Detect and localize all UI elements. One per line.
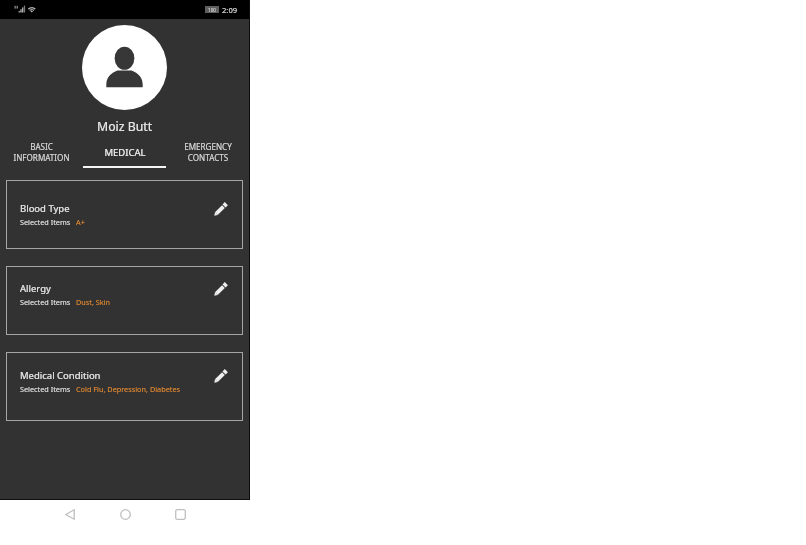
staticText: 100	[208, 7, 216, 13]
button[interactable]: Allergy	[6, 266, 243, 335]
button[interactable]: BASIC INFORMATION	[0, 139, 83, 168]
button[interactable]: MEDICAL	[83, 139, 166, 168]
button[interactable]: Edit Medical Condition	[213, 366, 231, 384]
staticText: Blood Type	[20, 202, 70, 215]
staticText: Allergy	[20, 282, 51, 295]
button[interactable]: Edit Blood Type	[213, 199, 231, 217]
staticText: Moiz Butt	[97, 118, 153, 135]
button[interactable]: Home	[110, 500, 140, 528]
staticText: Selected Items	[20, 217, 71, 227]
staticText: Cold Flu, Depression, Diabetes	[76, 384, 181, 394]
button[interactable]: Recent apps	[165, 500, 195, 528]
button[interactable]: Profile photo	[82, 25, 167, 110]
button[interactable]: Edit Allergy	[213, 279, 231, 297]
staticText: MEDICAL	[104, 146, 146, 159]
staticText: 2:09	[222, 5, 238, 15]
button[interactable]: Blood Type	[6, 180, 243, 249]
button[interactable]: Back	[55, 500, 85, 528]
staticText: Selected Items	[20, 384, 71, 394]
staticText: EMERGENCY CONTACTS	[184, 141, 232, 163]
staticText: BASIC INFORMATION	[13, 141, 70, 163]
staticText: Medical Condition	[20, 369, 101, 382]
button[interactable]: Medical Condition	[6, 352, 243, 421]
staticText: Selected Items	[20, 297, 71, 307]
staticText: A+	[76, 217, 85, 227]
staticText: Dust, Skin	[76, 297, 111, 307]
button[interactable]: EMERGENCY CONTACTS	[166, 139, 249, 168]
